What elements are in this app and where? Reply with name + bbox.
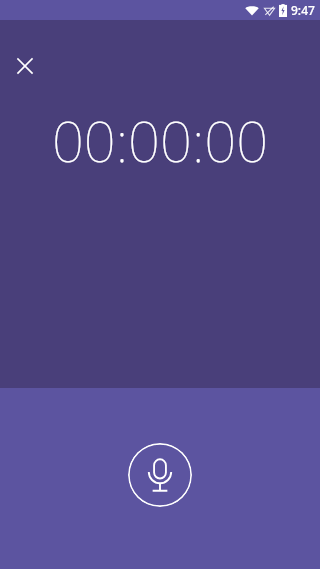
staticText: 00:00:00 [0,102,320,178]
button[interactable]: Close [5,46,45,86]
button[interactable]: Record with microphone [128,443,192,507]
staticText: 9:47 [291,2,315,18]
